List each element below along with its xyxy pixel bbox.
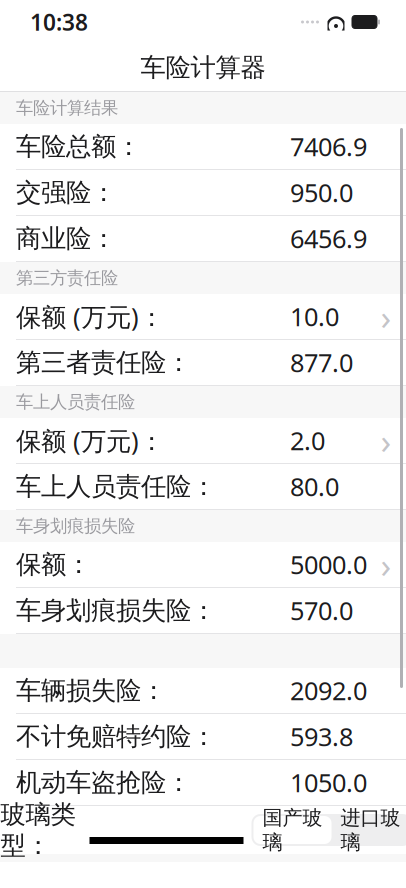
staticText: 80.0 <box>290 470 339 503</box>
staticText: 车辆损失险： <box>16 675 166 706</box>
button[interactable]: 车上人员责任险： <box>0 464 406 510</box>
staticText: 车险计算器 <box>140 52 265 83</box>
staticText: 进口玻璃 <box>340 805 400 854</box>
staticText: 第三者责任险： <box>16 347 191 378</box>
staticText: 保额： <box>16 549 91 580</box>
button[interactable]: 国产玻璃 <box>253 816 331 844</box>
button[interactable]: 交强险： <box>0 170 406 216</box>
button[interactable]: 保额： <box>0 542 406 588</box>
staticText: 国产玻璃 <box>262 805 322 854</box>
staticText: 不计免赔特约险： <box>16 721 216 752</box>
staticText: 2.0 <box>290 424 325 457</box>
button[interactable]: 车身划痕损失险： <box>0 588 406 634</box>
button[interactable]: 商业险： <box>0 216 406 262</box>
staticText: 车身划痕损失险： <box>16 595 216 626</box>
staticText: 5000.0 <box>290 548 367 581</box>
button[interactable]: 车险总额： <box>0 124 406 170</box>
staticText: 交强险： <box>16 177 116 208</box>
button[interactable]: 保额 (万元)： <box>0 418 406 464</box>
button[interactable]: 第三者责任险： <box>0 340 406 386</box>
staticText: 6456.9 <box>290 222 367 255</box>
button[interactable]: 进口玻璃 <box>331 816 406 844</box>
staticText: 2092.0 <box>290 674 367 707</box>
staticText: › <box>380 541 391 587</box>
button[interactable]: 车辆损失险： <box>0 668 406 714</box>
staticText: 593.8 <box>290 720 353 753</box>
staticText: › <box>380 417 391 463</box>
staticText: › <box>380 293 391 339</box>
staticText: 10.0 <box>290 300 339 333</box>
staticText: 950.0 <box>290 176 353 209</box>
staticText: 机动车盗抢险： <box>16 767 191 798</box>
staticText: 车上人员责任险： <box>16 471 216 502</box>
staticText: 保额 (万元)： <box>16 300 164 333</box>
staticText: 玻璃类型： <box>0 799 75 861</box>
staticText: 车上人员责任险 <box>16 391 135 413</box>
staticText: 1050.0 <box>290 766 367 799</box>
staticText: 商业险： <box>16 223 116 254</box>
staticText: 车险总额： <box>16 131 141 162</box>
staticText: 车身划痕损失险 <box>16 515 135 537</box>
staticText: 7406.9 <box>290 130 367 163</box>
staticText: 877.0 <box>290 346 353 379</box>
staticText: 第三方责任险 <box>16 267 118 289</box>
button[interactable]: 保额 (万元)： <box>0 294 406 340</box>
staticText: 车险计算结果 <box>16 97 118 119</box>
staticText: 570.0 <box>290 594 353 627</box>
button[interactable]: 机动车盗抢险： <box>0 760 406 806</box>
staticText: 保额 (万元)： <box>16 424 164 457</box>
staticText: 10:38 <box>30 7 88 37</box>
button[interactable]: 不计免赔特约险： <box>0 714 406 760</box>
